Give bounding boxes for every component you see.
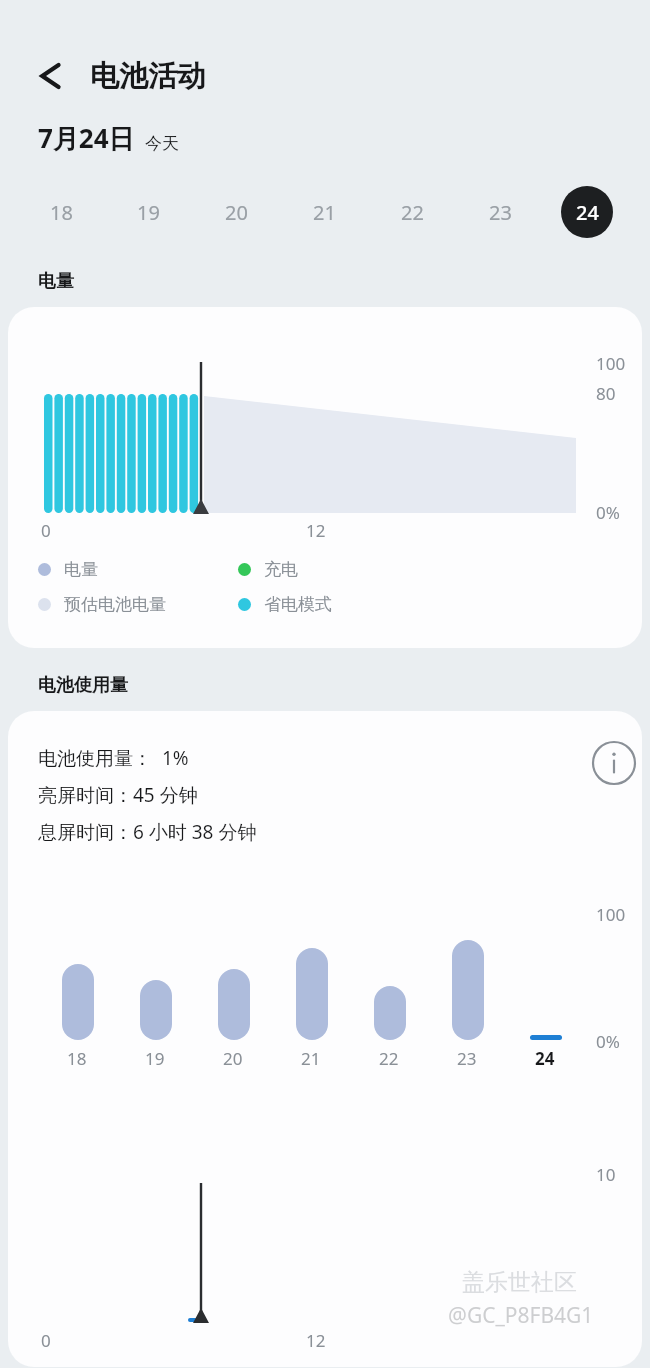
- button[interactable]: 23: [474, 186, 526, 238]
- staticText: @GC_P8FB4G1: [448, 1301, 594, 1330]
- button[interactable]: 18: [35, 186, 87, 238]
- staticText: 电池使用量： 1%: [38, 745, 189, 771]
- button[interactable]: 电量: [38, 559, 238, 580]
- staticText: 21: [301, 1047, 321, 1070]
- staticText: 0%: [596, 501, 620, 524]
- staticText: 省电模式: [264, 594, 332, 615]
- button[interactable]: 22: [386, 186, 438, 238]
- staticText: 电量: [38, 270, 74, 293]
- staticText: 24: [576, 199, 599, 226]
- button[interactable]: 24: [561, 186, 613, 238]
- staticText: 80: [596, 382, 616, 405]
- staticText: 18: [67, 1047, 87, 1070]
- staticText: 24: [535, 1047, 555, 1070]
- staticText: 22: [401, 199, 424, 226]
- staticText: 20: [225, 199, 248, 226]
- staticText: 电池活动: [90, 58, 206, 95]
- staticText: 盖乐世社区: [462, 1268, 577, 1297]
- staticText: 100: [596, 352, 626, 375]
- staticText: 0%: [596, 1030, 620, 1053]
- staticText: 充电: [264, 559, 298, 580]
- staticText: 19: [145, 1047, 165, 1070]
- staticText: 100: [596, 903, 626, 926]
- staticText: 12: [306, 1329, 326, 1352]
- button[interactable]: 20: [210, 186, 262, 238]
- button[interactable]: 充电: [238, 559, 438, 580]
- staticText: 电量: [64, 559, 98, 580]
- staticText: 预估电池电量: [64, 594, 166, 615]
- staticText: 10: [596, 1163, 616, 1186]
- staticText: 电池使用量: [38, 674, 128, 697]
- button[interactable]: 21: [298, 186, 350, 238]
- staticText: 亮屏时间：45 分钟: [38, 782, 198, 808]
- staticText: 23: [489, 199, 512, 226]
- staticText: 21: [313, 199, 336, 226]
- staticText: 今天: [145, 133, 179, 154]
- button[interactable]: 19: [122, 186, 174, 238]
- button[interactable]: Back: [24, 52, 72, 100]
- staticText: 20: [223, 1047, 243, 1070]
- staticText: 12: [306, 519, 326, 542]
- staticText: 23: [457, 1047, 477, 1070]
- staticText: 7月24日: [38, 120, 135, 156]
- button[interactable]: 100: [8, 307, 642, 648]
- staticText: 19: [137, 199, 160, 226]
- staticText: 22: [379, 1047, 399, 1070]
- button[interactable]: 省电模式: [238, 594, 438, 615]
- button[interactable]: 预估电池电量: [38, 594, 238, 615]
- staticText: 息屏时间：6 小时 38 分钟: [38, 819, 257, 845]
- staticText: 0: [41, 519, 51, 542]
- staticText: 18: [50, 199, 73, 226]
- button[interactable]: Information: [588, 737, 640, 789]
- staticText: 0: [41, 1329, 51, 1352]
